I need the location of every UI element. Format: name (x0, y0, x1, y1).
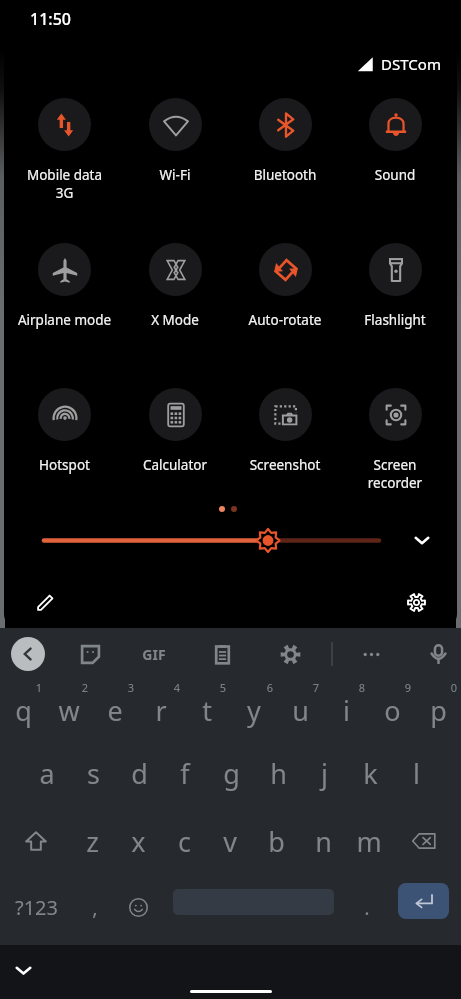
staticText: r (155, 692, 167, 729)
button[interactable]: gear (271, 635, 309, 673)
button[interactable]: b (253, 814, 299, 868)
staticText: ?123 (15, 894, 58, 921)
button[interactable]: c (161, 814, 207, 868)
staticText: p (430, 692, 447, 729)
button[interactable]: f (162, 741, 208, 805)
staticText: n (315, 823, 332, 860)
staticText: x (131, 823, 146, 860)
staticText: Airplane mode (9, 311, 120, 329)
staticText: e (107, 692, 123, 729)
staticText: v (223, 823, 237, 860)
button[interactable]: Screenshot (230, 388, 340, 474)
staticText: Auto-rotate (230, 311, 340, 329)
staticText: Screen (340, 456, 450, 474)
button[interactable]: k (347, 741, 393, 805)
staticText: l (413, 755, 420, 792)
button[interactable]: , (72, 885, 118, 929)
staticText: 0 (443, 680, 461, 695)
button[interactable]: dots (352, 635, 390, 673)
button[interactable]: e (92, 678, 138, 742)
button[interactable]: clip (203, 635, 241, 673)
staticText: Hotspot (9, 456, 120, 474)
button[interactable]: i (323, 678, 369, 742)
button[interactable]: Backspace (401, 814, 447, 868)
staticText: 7 (305, 680, 327, 695)
staticText: . (364, 894, 370, 921)
staticText: 1 (28, 680, 50, 695)
staticText: z (86, 823, 99, 860)
button[interactable]: v (207, 814, 253, 868)
button[interactable]: Bluetooth (230, 98, 340, 184)
staticText: 3G (9, 184, 120, 202)
button[interactable]: t (184, 678, 230, 742)
staticText: Mobile data (9, 166, 120, 184)
staticText: k (363, 755, 378, 792)
button[interactable]: y (231, 678, 277, 742)
staticText: Bluetooth (230, 166, 340, 184)
button[interactable]: x (115, 814, 161, 868)
button[interactable]: q (0, 678, 46, 742)
staticText: 11:50 (30, 8, 71, 30)
button[interactable]: Sound (340, 98, 450, 184)
staticText: w (58, 692, 80, 729)
staticText: m (356, 823, 382, 860)
button[interactable]: Auto-rotate (230, 243, 340, 329)
staticText: 5 (212, 680, 234, 695)
button[interactable]: s (70, 741, 116, 805)
button[interactable]: g (208, 741, 254, 805)
button[interactable]: GIF (135, 635, 173, 673)
staticText: q (15, 692, 32, 729)
staticText: DSTCom (381, 54, 441, 74)
staticText: 8 (351, 680, 373, 695)
staticText: g (223, 755, 240, 792)
button[interactable]: p (415, 678, 461, 742)
button[interactable]: Mobile data (9, 98, 120, 202)
button[interactable]: Emoji (118, 885, 158, 929)
button[interactable]: Airplane mode (9, 243, 120, 329)
button[interactable]: Settings (398, 584, 434, 620)
button[interactable]: X Mode (120, 243, 230, 329)
button[interactable]: u (277, 678, 323, 742)
staticText: o (384, 692, 401, 729)
button[interactable]: a (24, 741, 70, 805)
button[interactable]: o (369, 678, 415, 742)
button[interactable]: Calculator (120, 388, 230, 474)
button[interactable]: h (255, 741, 301, 805)
button[interactable]: l (393, 741, 439, 805)
button[interactable]: z (69, 814, 115, 868)
button[interactable]: Edit tiles (28, 584, 64, 620)
staticText: y (247, 692, 261, 729)
staticText: Sound (340, 166, 450, 184)
staticText: recorder (340, 474, 450, 492)
button[interactable]: Flashlight (340, 243, 450, 329)
button[interactable]: Wi-Fi (120, 98, 230, 184)
button[interactable]: mic (419, 635, 457, 673)
staticText: 9 (397, 680, 419, 695)
button[interactable]: w (46, 678, 92, 742)
button[interactable]: m (346, 814, 392, 868)
staticText: f (180, 755, 190, 792)
staticText: i (343, 692, 350, 729)
staticText: j (321, 755, 328, 792)
staticText: s (87, 755, 100, 792)
button[interactable]: Screen (340, 388, 450, 492)
button[interactable]: Hotspot (9, 388, 120, 474)
staticText: 2 (74, 680, 96, 695)
button[interactable]: Collapse keyboard (6, 953, 40, 987)
button[interactable]: Shift (13, 814, 59, 868)
staticText: Screenshot (230, 456, 340, 474)
button[interactable]: Back (11, 637, 45, 671)
button[interactable]: d (116, 741, 162, 805)
button[interactable]: . (345, 885, 389, 929)
staticText: b (268, 823, 285, 860)
staticText: 4 (166, 680, 188, 695)
staticText: 6 (259, 680, 281, 695)
staticText: h (270, 755, 287, 792)
button[interactable]: n (300, 814, 346, 868)
button[interactable]: r (138, 678, 184, 742)
button[interactable]: ?123 (8, 885, 64, 929)
button[interactable]: sticker (71, 635, 109, 673)
button[interactable]: Enter (398, 883, 449, 919)
button[interactable]: j (301, 741, 347, 805)
